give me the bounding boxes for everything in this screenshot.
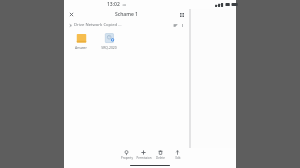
button[interactable]: More options xyxy=(179,22,186,29)
button[interactable]: Answer xyxy=(71,32,91,51)
staticText: Edit xyxy=(175,156,181,160)
button[interactable]: SRQ-2020 xyxy=(99,32,119,51)
staticText: Delete xyxy=(156,156,165,160)
staticText: 13:02 xyxy=(107,1,120,8)
button[interactable]: Permission xyxy=(135,149,152,161)
staticText: Permission xyxy=(136,156,152,160)
button[interactable]: Delete xyxy=(152,149,169,161)
staticText: SRQ-2020 xyxy=(101,45,117,50)
staticText: Property xyxy=(121,156,133,160)
button[interactable]: Edit xyxy=(169,149,186,161)
button[interactable]: Sort xyxy=(172,22,179,29)
staticText: Schame 1 xyxy=(115,11,138,18)
button[interactable]: Drive Network Copied bu.. - SharePoint xyxy=(64,20,189,30)
button[interactable]: Close xyxy=(67,10,76,19)
button[interactable]: Property xyxy=(118,149,135,161)
staticText: Answer xyxy=(75,45,87,50)
staticText: Drive Network Copied bu.. - SharePoint xyxy=(74,22,123,28)
button[interactable]: Grid view xyxy=(177,10,186,19)
